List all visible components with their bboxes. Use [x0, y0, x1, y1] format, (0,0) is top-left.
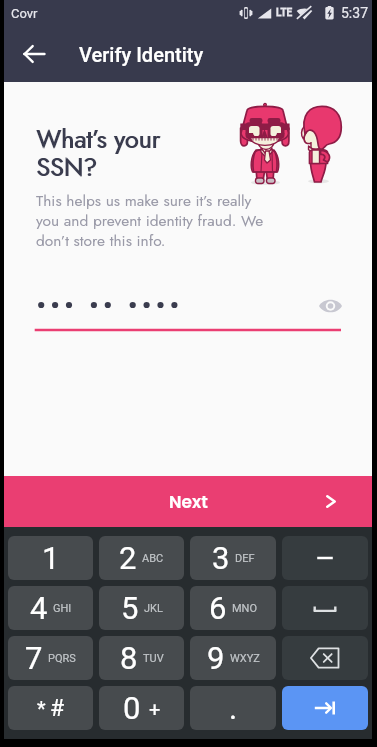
staticText: JKL: [144, 602, 163, 615]
staticText: 9: [207, 640, 225, 676]
button[interactable]: .: [190, 686, 276, 730]
staticText: #: [50, 695, 65, 722]
button[interactable]: 0: [99, 686, 184, 730]
staticText: This helps us make sure it’s really you …: [36, 189, 264, 252]
button[interactable]: 9: [190, 636, 276, 680]
staticText: 0: [123, 690, 141, 726]
staticText: ABC: [142, 552, 164, 565]
button[interactable]: Next: [4, 476, 372, 527]
button[interactable]: 3: [190, 536, 276, 580]
button[interactable]: 6: [190, 586, 276, 630]
button[interactable]: Space: [282, 586, 368, 630]
button[interactable]: Back: [13, 33, 55, 75]
staticText: 5:37: [341, 5, 368, 21]
button[interactable]: Backspace: [282, 636, 368, 680]
staticText: Covr: [11, 6, 38, 21]
button[interactable]: 7: [8, 636, 93, 680]
staticText: LTE: [276, 7, 293, 19]
staticText: What’s your SSN?: [37, 121, 161, 185]
button[interactable]: Minus: [282, 536, 368, 580]
staticText: 8: [120, 640, 138, 676]
button[interactable]: Show SSN: [315, 291, 345, 321]
staticText: GHI: [53, 602, 72, 615]
staticText: +: [149, 697, 161, 720]
staticText: Verify Identity: [79, 43, 204, 66]
button[interactable]: 4: [8, 586, 93, 630]
staticText: 6: [209, 590, 227, 626]
button[interactable]: *: [8, 686, 93, 730]
staticText: 7: [25, 640, 43, 676]
staticText: 1: [42, 540, 60, 576]
staticText: MNO: [232, 602, 258, 615]
staticText: WXYZ: [230, 652, 260, 665]
staticText: .: [229, 690, 238, 726]
staticText: TUV: [143, 652, 164, 665]
button[interactable]: 2: [99, 536, 184, 580]
staticText: 2: [119, 540, 137, 576]
button[interactable]: Next: [282, 686, 368, 730]
button[interactable]: 8: [99, 636, 184, 680]
staticText: PQRS: [48, 652, 76, 665]
button[interactable]: 5: [99, 586, 184, 630]
staticText: DEF: [235, 552, 255, 565]
staticText: What’s your SSN?: [36, 121, 160, 185]
staticText: 3: [212, 540, 230, 576]
staticText: 4: [30, 590, 48, 626]
button[interactable]: 1: [8, 536, 93, 580]
staticText: Next: [169, 490, 208, 514]
staticText: 5: [121, 590, 139, 626]
staticText: *: [37, 697, 46, 720]
